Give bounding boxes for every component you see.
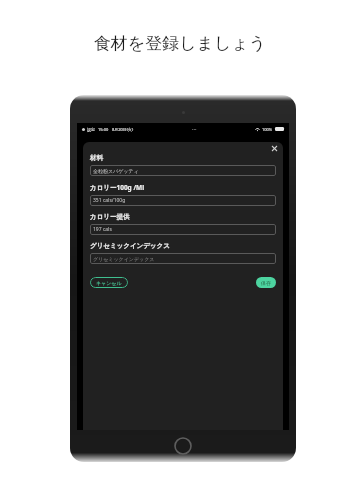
button[interactable]: 保存 xyxy=(256,277,276,288)
staticText: 8月20日(火) xyxy=(112,127,134,132)
button[interactable]: キャンセル xyxy=(90,277,128,288)
button[interactable]: グリセミックインデックス xyxy=(90,253,276,264)
staticText: カロリー100g /Ml xyxy=(90,183,145,192)
button[interactable]: 全粒粉スパゲッティ xyxy=(90,165,276,176)
staticText: 351 cals/100g xyxy=(93,197,126,204)
button[interactable]: 閉じる xyxy=(269,143,280,154)
staticText: 全粒粉スパゲッティ xyxy=(93,168,139,174)
staticText: 保存 xyxy=(261,280,271,286)
staticText: キャンセル xyxy=(96,280,122,286)
button[interactable]: 351 cals/100g xyxy=(90,195,276,206)
staticText: 15:00 xyxy=(98,127,109,132)
staticText: 食材を登録しましょう xyxy=(0,33,360,54)
staticText: 100% xyxy=(262,127,273,132)
staticText: ••• xyxy=(192,127,197,132)
staticText: 設定 xyxy=(87,127,95,132)
button[interactable]: 197 cals xyxy=(90,224,276,235)
staticText: カロリー提供 xyxy=(90,213,130,221)
staticText: グリセミックインデックス xyxy=(90,242,170,250)
staticText: グリセミックインデックス xyxy=(93,256,155,262)
staticText: 材料 xyxy=(90,154,103,162)
staticText: 197 cals xyxy=(93,226,112,233)
